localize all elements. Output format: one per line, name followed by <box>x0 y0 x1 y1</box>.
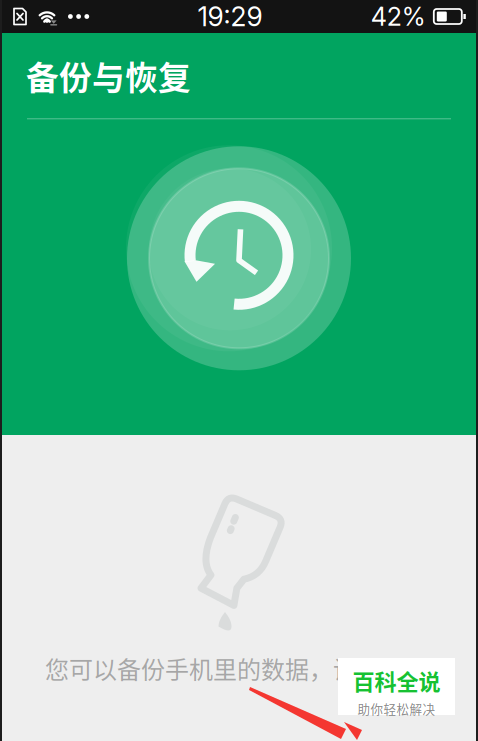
staticText: 备份与恢复 <box>26 52 191 99</box>
staticText: 42% <box>371 1 426 32</box>
staticText: 助你轻松解决 <box>357 699 435 717</box>
staticText: 您可以备份手机里的数据，设置等内容 <box>45 651 453 686</box>
staticText: 19:29 <box>197 0 262 33</box>
staticText: 百科全说 <box>352 664 440 696</box>
